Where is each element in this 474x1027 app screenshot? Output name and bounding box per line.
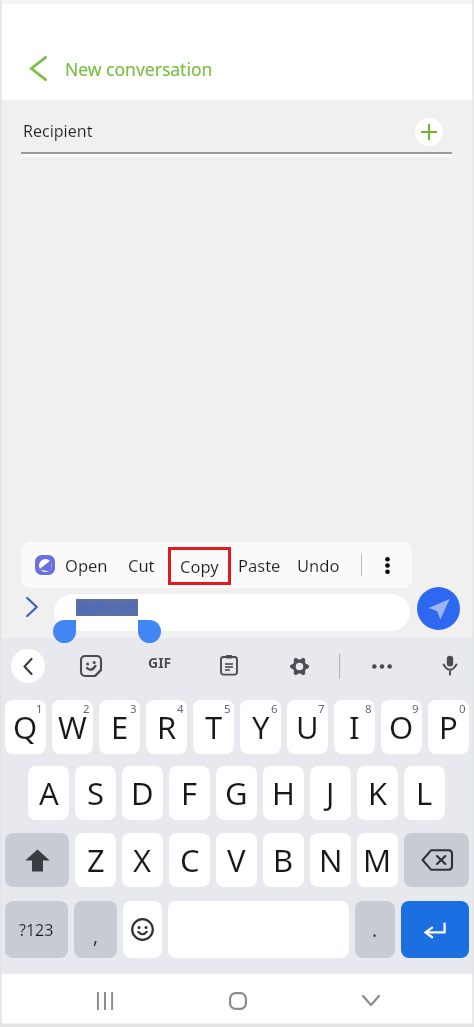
staticText: 6	[271, 701, 278, 717]
staticText: T	[205, 706, 223, 748]
button[interactable]: U	[287, 700, 328, 754]
button[interactable]: Recents	[82, 978, 127, 1023]
staticText: New conversation	[65, 57, 213, 81]
staticText: B	[273, 839, 294, 881]
button[interactable]: I	[334, 700, 375, 754]
button[interactable]: Clipboard	[214, 650, 244, 680]
button[interactable]: Shift	[5, 833, 69, 887]
button[interactable]: .	[355, 901, 395, 958]
staticText: H	[272, 772, 295, 814]
button[interactable]: Emoji	[123, 901, 162, 958]
staticText: ,	[93, 923, 99, 949]
staticText: Undo	[297, 554, 340, 576]
button[interactable]: Undo	[297, 547, 340, 583]
staticText: R	[157, 706, 177, 748]
button[interactable]: Copy	[168, 547, 231, 585]
button[interactable]: N	[310, 833, 351, 887]
button[interactable]: Q	[5, 700, 46, 754]
button[interactable]: GIF	[145, 652, 175, 672]
staticText: S	[87, 772, 105, 814]
button[interactable]: Y	[240, 700, 281, 754]
button[interactable]: X	[122, 833, 163, 887]
button[interactable]: H	[263, 766, 304, 820]
staticText: Cut	[128, 554, 155, 576]
button[interactable]: A	[28, 766, 69, 820]
staticText: Open	[65, 554, 108, 576]
button[interactable]: M	[357, 833, 398, 887]
button[interactable]: Cut	[128, 547, 155, 583]
button[interactable]: T	[193, 700, 234, 754]
button[interactable]: V	[216, 833, 257, 887]
button[interactable]: Send	[417, 587, 460, 630]
button[interactable]: O	[381, 700, 422, 754]
staticText: K	[368, 772, 388, 814]
staticText: Copy	[180, 555, 219, 577]
staticText: F	[181, 772, 198, 814]
button[interactable]: D	[122, 766, 163, 820]
staticText: alphr.com	[78, 599, 136, 616]
staticText: P	[439, 706, 458, 748]
button[interactable]: Hide keyboard	[348, 978, 393, 1023]
staticText: J	[326, 772, 335, 814]
staticText: G	[225, 772, 248, 814]
button[interactable]: S	[75, 766, 116, 820]
staticText: 3	[130, 701, 137, 717]
staticText: X	[133, 839, 152, 881]
button[interactable]: Open	[65, 547, 108, 583]
button[interactable]: Back	[21, 46, 55, 90]
staticText: I	[349, 706, 360, 748]
staticText: GIF	[148, 653, 172, 672]
button[interactable]: G	[216, 766, 257, 820]
staticText: 5	[224, 701, 231, 717]
button[interactable]: J	[310, 766, 351, 820]
button[interactable]: L	[404, 766, 445, 820]
button[interactable]: F	[169, 766, 210, 820]
button[interactable]: More	[367, 651, 397, 681]
button[interactable]: Home	[215, 978, 260, 1023]
button[interactable]: K	[357, 766, 398, 820]
staticText: C	[180, 839, 200, 881]
staticText: M	[363, 839, 392, 881]
button[interactable]: Paste	[238, 547, 281, 583]
staticText: 1	[36, 701, 43, 717]
button[interactable]: Voice input	[435, 650, 465, 680]
button[interactable]: More options	[375, 553, 399, 577]
staticText: 9	[412, 701, 419, 717]
staticText: V	[227, 839, 246, 881]
staticText: .	[372, 917, 378, 943]
staticText: O	[389, 706, 414, 748]
button[interactable]: Z	[75, 833, 116, 887]
staticText: Z	[87, 839, 105, 881]
staticText: 0	[459, 701, 466, 717]
staticText: A	[39, 772, 59, 814]
button[interactable]: P	[428, 700, 469, 754]
staticText: Q	[13, 706, 38, 748]
button[interactable]: W	[52, 700, 93, 754]
button[interactable]: R	[146, 700, 187, 754]
button[interactable]	[54, 594, 410, 631]
staticText: L	[416, 772, 433, 814]
staticText: 7	[318, 701, 325, 717]
staticText: W	[58, 706, 87, 748]
button[interactable]: Collapse	[11, 649, 45, 683]
button[interactable]: B	[263, 833, 304, 887]
button[interactable]: Add recipient	[407, 110, 451, 154]
button[interactable]: ?123	[5, 901, 68, 958]
staticText: U	[296, 706, 319, 748]
button[interactable]: C	[169, 833, 210, 887]
button[interactable]: ,	[74, 901, 117, 958]
button[interactable]: Stickers	[76, 651, 106, 681]
button[interactable]: Enter	[401, 901, 469, 958]
staticText: Y	[252, 706, 270, 748]
staticText: 2	[83, 701, 90, 717]
button[interactable]: Settings	[284, 651, 314, 681]
staticText: N	[319, 839, 343, 881]
staticText: 4	[177, 701, 184, 717]
staticText: D	[131, 772, 154, 814]
button[interactable]: Backspace	[404, 833, 469, 887]
button[interactable]: E	[99, 700, 140, 754]
staticText: ?123	[19, 919, 54, 941]
staticText: E	[111, 706, 129, 748]
staticText: Paste	[238, 554, 281, 576]
